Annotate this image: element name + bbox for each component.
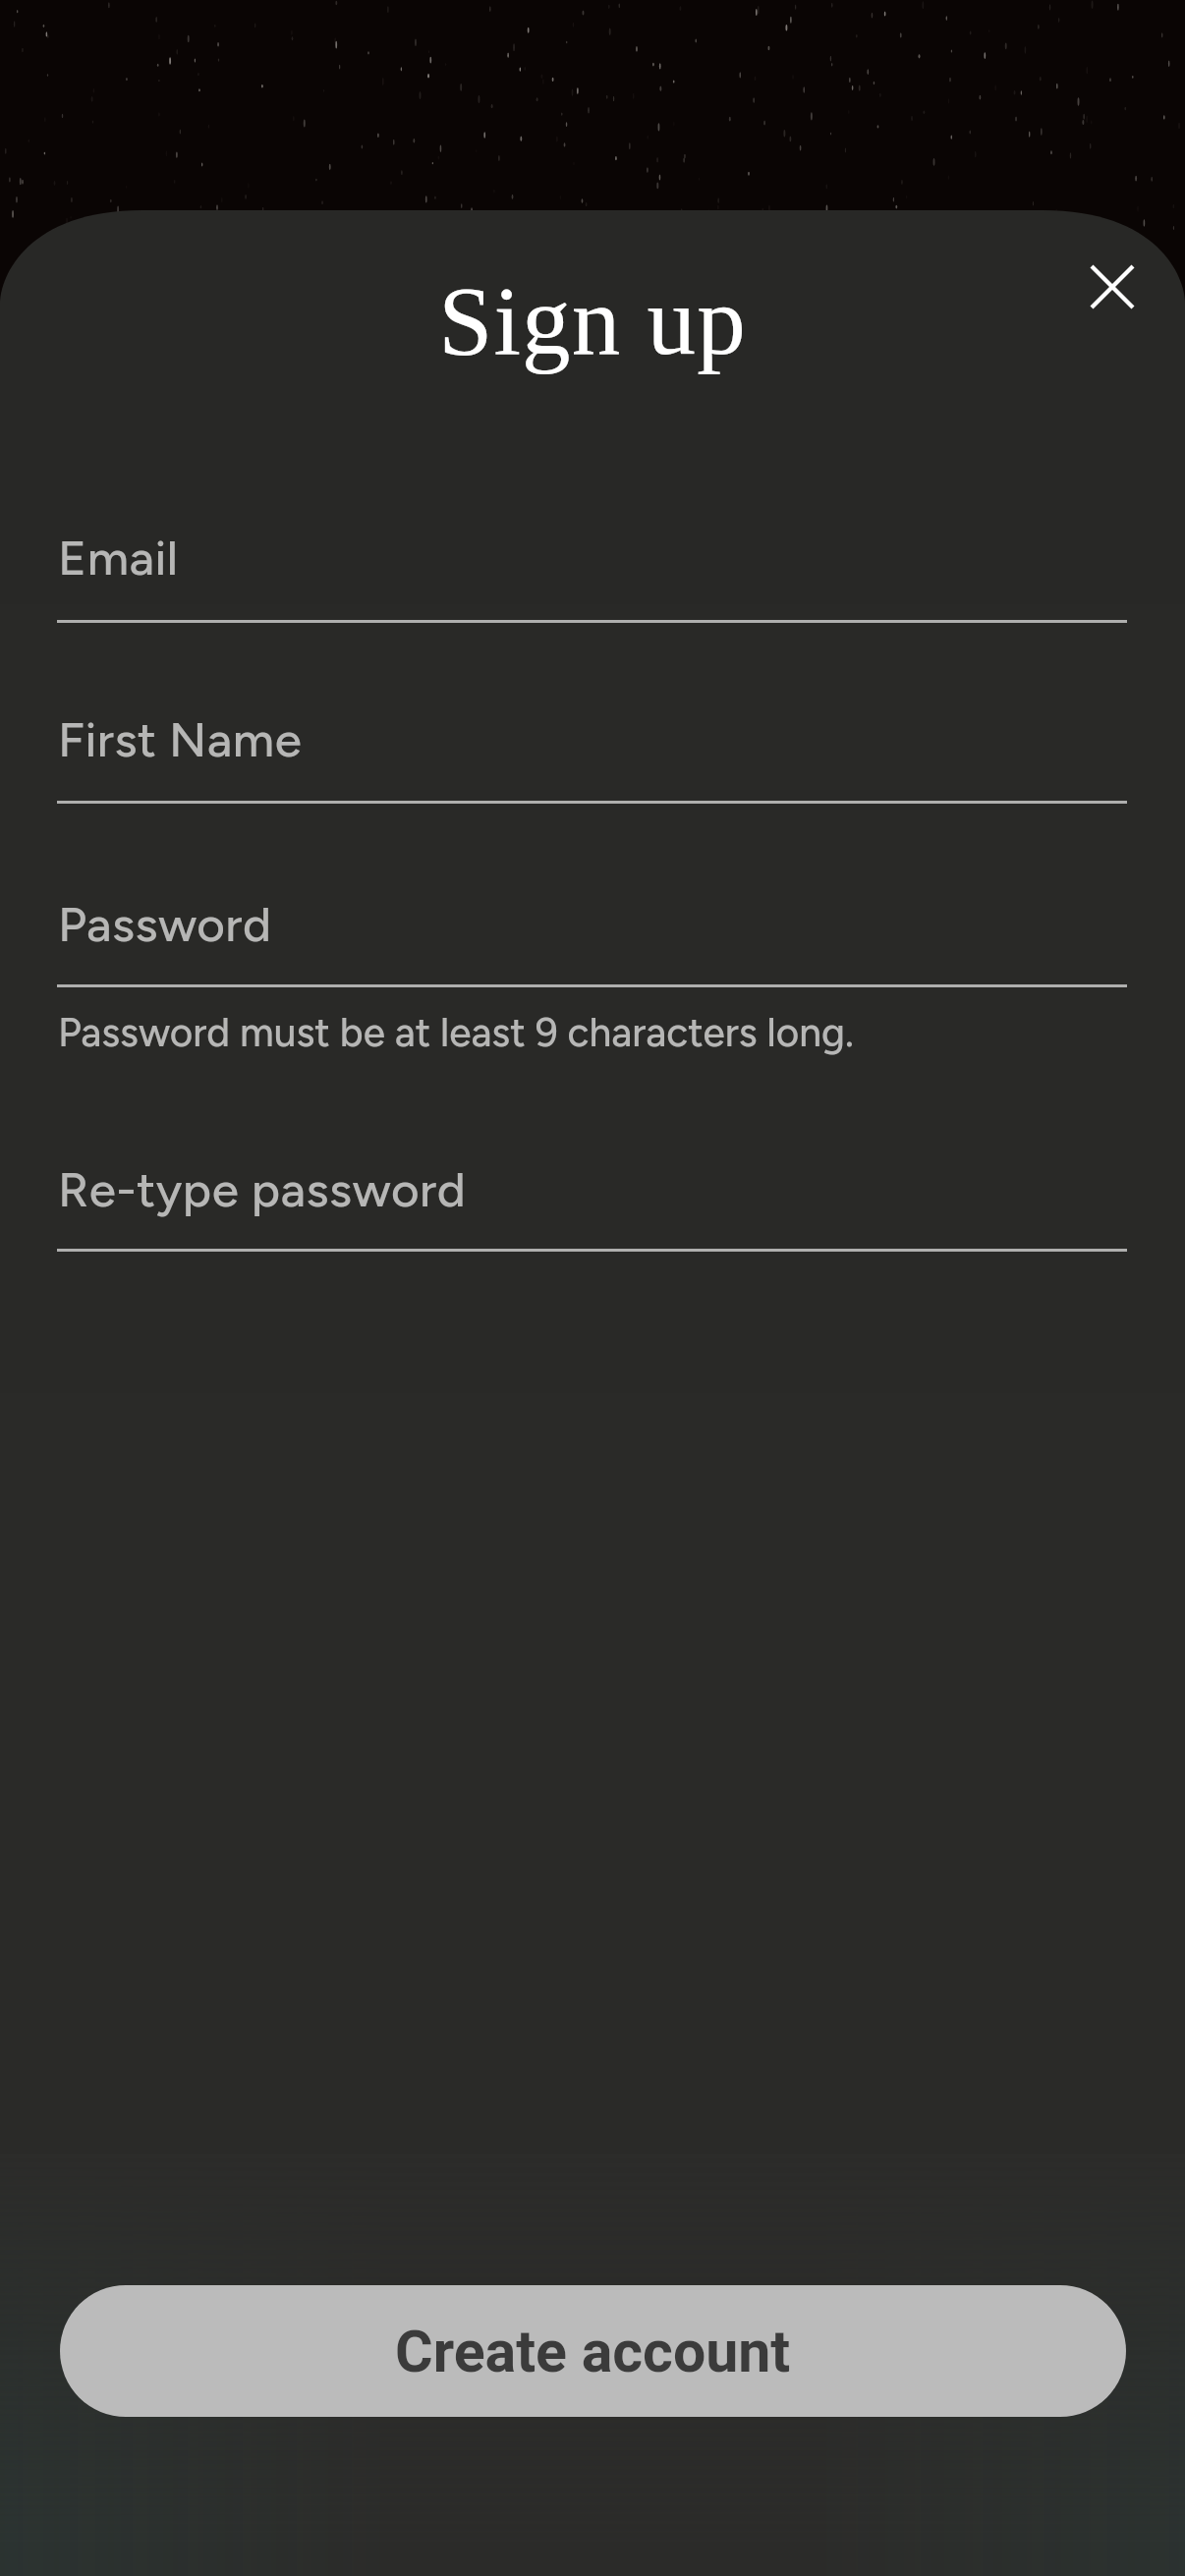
staticText: Re-type password [58, 1160, 467, 1218]
button[interactable]: Email [0, 491, 1185, 648]
staticText: Create account [395, 2318, 791, 2385]
staticText: Password must be at least 9 characters l… [58, 1009, 854, 1056]
button[interactable]: Close [1058, 233, 1166, 341]
button[interactable]: Create account [60, 2285, 1126, 2417]
staticText: First Name [58, 710, 303, 768]
staticText: Email [58, 529, 179, 587]
staticText: Password [58, 895, 272, 953]
button[interactable]: Re-type password [0, 1125, 1185, 1277]
button[interactable]: Password [0, 860, 1185, 1012]
staticText: Sign up [0, 267, 1185, 377]
button[interactable]: First Name [0, 678, 1185, 830]
